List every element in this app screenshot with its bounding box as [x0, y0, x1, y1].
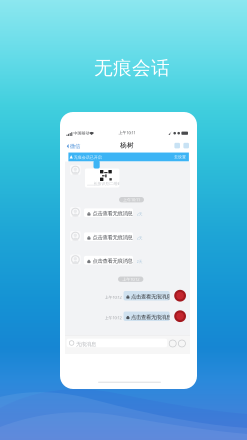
button[interactable]: 点击查看无痕消息 — [84, 232, 133, 241]
button[interactable]: More — [178, 340, 185, 347]
staticText: 点击查看无痕消息 — [92, 234, 132, 241]
staticText: 点击查看无痕消息 — [92, 210, 132, 217]
button[interactable]: 点击查看无痕消息 — [84, 256, 133, 264]
staticText: 点击查看无痕消息 — [131, 314, 171, 321]
staticText: 2天 — [136, 259, 142, 264]
button[interactable]: 无痕消息 — [67, 339, 167, 347]
button[interactable]: Video call — [174, 143, 180, 148]
button[interactable]: 点击查看无痕消息 — [123, 291, 170, 300]
button[interactable]: 长按识别二维码 — [85, 168, 119, 187]
staticText: 上午10:11 — [118, 130, 135, 135]
staticText: 上午10:12 — [104, 315, 121, 320]
button[interactable]: Emoji — [169, 340, 176, 347]
button[interactable]: 点击查看无痕消息 — [84, 208, 133, 217]
staticText: 无痕会话已开启 — [74, 155, 102, 160]
staticText: 2天 — [136, 235, 142, 241]
staticText: 上午10:11 — [123, 197, 140, 202]
staticText: 上午10:12 — [104, 294, 121, 300]
button[interactable]: 无痕会话已开启 — [68, 152, 189, 161]
staticText: 点击查看无痕消息 — [92, 258, 132, 264]
staticText: 杨树 — [120, 141, 134, 149]
staticText: 无痕会话 — [94, 56, 170, 79]
button[interactable]: 点击查看无痕消息 — [123, 311, 170, 321]
staticText: 微信 — [70, 143, 80, 149]
staticText: 中国移动 — [73, 131, 89, 135]
staticText: 长按识别二维码 — [93, 181, 121, 186]
staticText: 上午10:12 — [122, 276, 139, 282]
staticText: 去设置 — [174, 154, 186, 159]
staticText: 点击查看无痕消息 — [131, 293, 171, 300]
button[interactable]: 微信 — [66, 142, 84, 150]
staticText: 无痕消息 — [76, 341, 96, 347]
staticText: 2天 — [136, 211, 142, 217]
button[interactable]: Chat info — [183, 143, 189, 148]
